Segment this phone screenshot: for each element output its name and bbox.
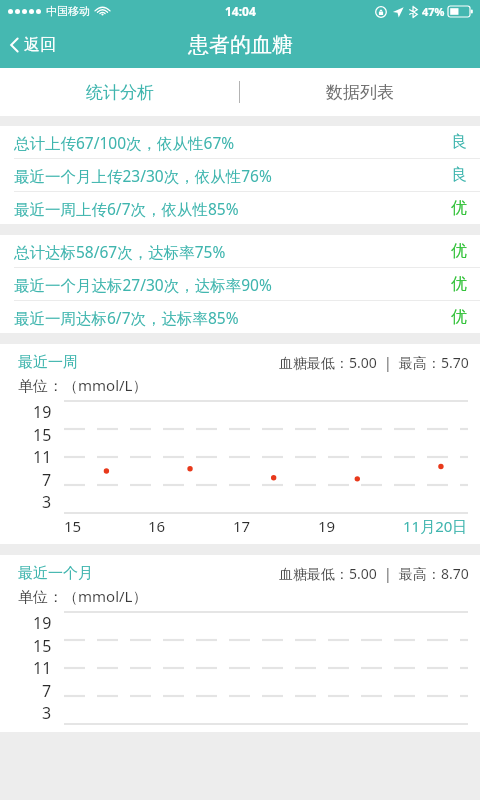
staticText: 最近一个月达标27/30次，达标率90% bbox=[14, 274, 272, 295]
staticText: 11月20日 bbox=[403, 516, 468, 536]
staticText: 7 bbox=[42, 469, 52, 491]
staticText: 最近一周 bbox=[18, 353, 78, 372]
staticText: 15 bbox=[33, 635, 52, 657]
button[interactable]: 数据列表 bbox=[240, 68, 480, 116]
button[interactable]: 总计达标58/67次，达标率75% bbox=[0, 235, 480, 267]
staticText: 11 bbox=[33, 446, 52, 468]
staticText: 良 bbox=[451, 132, 467, 152]
staticText: 总计上传67/100次，依从性67% bbox=[14, 132, 235, 153]
staticText: 最近一周上传6/7次，依从性85% bbox=[14, 198, 239, 219]
staticText: 血糖最低：5.00 | 最高：5.70 bbox=[279, 353, 469, 372]
staticText: 数据列表 bbox=[326, 82, 394, 103]
button[interactable]: 统计分析 bbox=[0, 68, 239, 116]
button[interactable]: 总计上传67/100次，依从性67% bbox=[0, 126, 480, 158]
staticText: 患者的血糖 bbox=[188, 32, 293, 58]
staticText: 16 bbox=[148, 516, 166, 536]
staticText: 最近一个月上传23/30次，依从性76% bbox=[14, 165, 272, 186]
staticText: 良 bbox=[451, 165, 467, 185]
staticText: 最近一个月 bbox=[18, 564, 93, 583]
button[interactable]: 最近一周达标6/7次，达标率85% bbox=[0, 301, 480, 333]
staticText: 最近一周达标6/7次，达标率85% bbox=[14, 307, 239, 328]
staticText: 11 bbox=[33, 657, 52, 679]
staticText: 优 bbox=[451, 307, 467, 327]
staticText: 血糖最低：5.00 | 最高：8.70 bbox=[279, 564, 469, 583]
staticText: 优 bbox=[451, 241, 467, 261]
staticText: 单位：（mmol/L） bbox=[18, 375, 148, 395]
staticText: 总计达标58/67次，达标率75% bbox=[14, 241, 226, 262]
staticText: 3 bbox=[42, 491, 52, 513]
staticText: 19 bbox=[318, 516, 336, 536]
staticText: 3 bbox=[42, 702, 52, 724]
staticText: 47% bbox=[422, 4, 445, 19]
staticText: 单位：（mmol/L） bbox=[18, 586, 148, 606]
staticText: 15 bbox=[33, 424, 52, 446]
staticText: 优 bbox=[451, 198, 467, 218]
staticText: 统计分析 bbox=[86, 82, 154, 103]
staticText: 15 bbox=[64, 516, 82, 536]
staticText: 17 bbox=[233, 516, 251, 536]
staticText: 7 bbox=[42, 680, 52, 702]
staticText: 返回 bbox=[24, 35, 56, 55]
button[interactable]: 最近一个月上传23/30次，依从性76% bbox=[0, 159, 480, 191]
staticText: 19 bbox=[33, 401, 52, 423]
staticText: 中国移动 bbox=[46, 4, 90, 18]
button[interactable]: 返回 bbox=[0, 26, 72, 64]
staticText: 19 bbox=[33, 612, 52, 634]
button[interactable]: 最近一周上传6/7次，依从性85% bbox=[0, 192, 480, 224]
staticText: 优 bbox=[451, 274, 467, 294]
button[interactable]: 最近一个月达标27/30次，达标率90% bbox=[0, 268, 480, 300]
staticText: 14:04 bbox=[225, 3, 256, 19]
